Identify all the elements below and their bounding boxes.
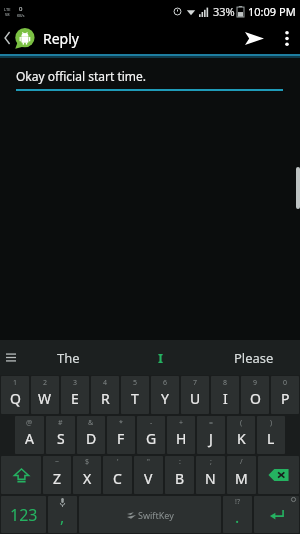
staticText: D xyxy=(86,429,97,448)
button[interactable]: 6 xyxy=(151,376,179,414)
button[interactable]: Okay official start time. xyxy=(0,68,300,91)
button[interactable]: 1 xyxy=(1,376,29,414)
button[interactable]: + xyxy=(167,416,195,454)
staticText: P xyxy=(281,389,290,408)
staticText: F xyxy=(117,429,125,448)
staticText: U xyxy=(190,389,201,408)
button[interactable]: ( xyxy=(227,416,255,454)
button[interactable]: Space xyxy=(79,496,221,533)
staticText: Y xyxy=(161,389,169,408)
staticText: @ xyxy=(26,418,33,428)
staticText: : xyxy=(179,457,181,467)
staticText: !? xyxy=(235,497,240,507)
button[interactable]: = xyxy=(197,416,225,454)
staticText: T xyxy=(131,389,139,408)
staticText: 3 xyxy=(73,378,78,388)
button[interactable]: Navigate up xyxy=(0,22,37,54)
staticText: W xyxy=(38,389,52,408)
staticText: 58 xyxy=(5,12,10,17)
button[interactable]: 8 xyxy=(211,376,239,414)
button[interactable]: " xyxy=(134,456,163,494)
staticText: * xyxy=(119,418,123,428)
button[interactable]: Shift xyxy=(1,456,41,494)
staticText: E xyxy=(71,389,79,408)
button[interactable]: ) xyxy=(257,416,285,454)
staticText: ) xyxy=(270,418,273,428)
staticText: A xyxy=(25,429,34,448)
staticText: . xyxy=(235,506,240,528)
staticText: # xyxy=(58,418,63,428)
button[interactable]: Keyboard menu xyxy=(0,340,22,375)
staticText: G xyxy=(146,429,157,448)
button[interactable]: * xyxy=(107,416,135,454)
staticText: 4 xyxy=(103,378,108,388)
button[interactable]: 4 xyxy=(91,376,119,414)
staticText: 8 xyxy=(223,378,228,388)
staticText: J xyxy=(209,429,213,448)
staticText: + xyxy=(179,418,184,428)
button[interactable]: 0 xyxy=(271,376,299,414)
staticText: 123 xyxy=(10,504,38,526)
staticText: Reply xyxy=(43,29,79,48)
button[interactable]: # xyxy=(46,416,75,454)
staticText: M xyxy=(235,469,248,488)
staticText: H xyxy=(176,429,187,448)
button[interactable]: - xyxy=(137,416,165,454)
button[interactable]: ~ xyxy=(43,456,71,494)
button[interactable]: @ xyxy=(15,416,44,454)
staticText: LTE xyxy=(4,7,11,12)
staticText: K xyxy=(237,429,246,448)
button[interactable]: Backspace xyxy=(258,456,299,494)
staticText: Q xyxy=(10,389,21,408)
button[interactable]: 9 xyxy=(241,376,269,414)
button[interactable]: 5 xyxy=(121,376,149,414)
staticText: S xyxy=(57,429,65,448)
button[interactable]: Send xyxy=(234,22,274,54)
staticText: - xyxy=(150,418,153,428)
staticText: V xyxy=(144,469,153,488)
button[interactable]: !? xyxy=(223,496,252,533)
button[interactable]: I xyxy=(114,340,207,375)
button[interactable]: 123 xyxy=(1,496,46,533)
staticText: R xyxy=(101,389,110,408)
staticText: ' xyxy=(117,457,119,467)
button[interactable]: / xyxy=(227,456,256,494)
button[interactable]: ; xyxy=(196,456,225,494)
button[interactable]: 7 xyxy=(181,376,209,414)
button[interactable]: Enter xyxy=(254,496,299,533)
staticText: 10:09 PM xyxy=(248,4,296,19)
button[interactable]: & xyxy=(77,416,105,454)
button[interactable]: ' xyxy=(103,456,132,494)
staticText: ; xyxy=(210,457,212,467)
staticText: I xyxy=(223,389,228,408)
staticText: N xyxy=(205,469,216,488)
staticText: 0 xyxy=(283,378,288,388)
staticText: ~ xyxy=(55,457,60,467)
staticText: 9 xyxy=(253,378,258,388)
staticText: O xyxy=(250,389,261,408)
staticText: SwiftKey xyxy=(138,509,174,521)
staticText: L xyxy=(267,429,275,448)
staticText: 5 xyxy=(133,378,138,388)
staticText: Z xyxy=(53,469,62,488)
button[interactable]: More options xyxy=(274,22,300,54)
staticText: 0 xyxy=(19,5,23,13)
button[interactable]: The xyxy=(22,340,114,375)
staticText: B xyxy=(175,469,185,488)
staticText: The xyxy=(57,349,80,367)
staticText: X xyxy=(83,469,92,488)
staticText: ( xyxy=(240,418,243,428)
button[interactable]: : xyxy=(165,456,194,494)
button[interactable]: 2 xyxy=(31,376,59,414)
staticText: / xyxy=(240,457,243,467)
button[interactable]: 3 xyxy=(61,376,89,414)
staticText: 7 xyxy=(193,378,198,388)
staticText: I xyxy=(158,349,164,367)
staticText: 33% xyxy=(213,4,235,19)
button[interactable]: Please xyxy=(207,340,300,375)
staticText: 1 xyxy=(13,378,18,388)
staticText: & xyxy=(88,418,94,428)
staticText: 6 xyxy=(163,378,168,388)
button[interactable]: $ xyxy=(73,456,101,494)
button[interactable]: , xyxy=(48,496,77,533)
